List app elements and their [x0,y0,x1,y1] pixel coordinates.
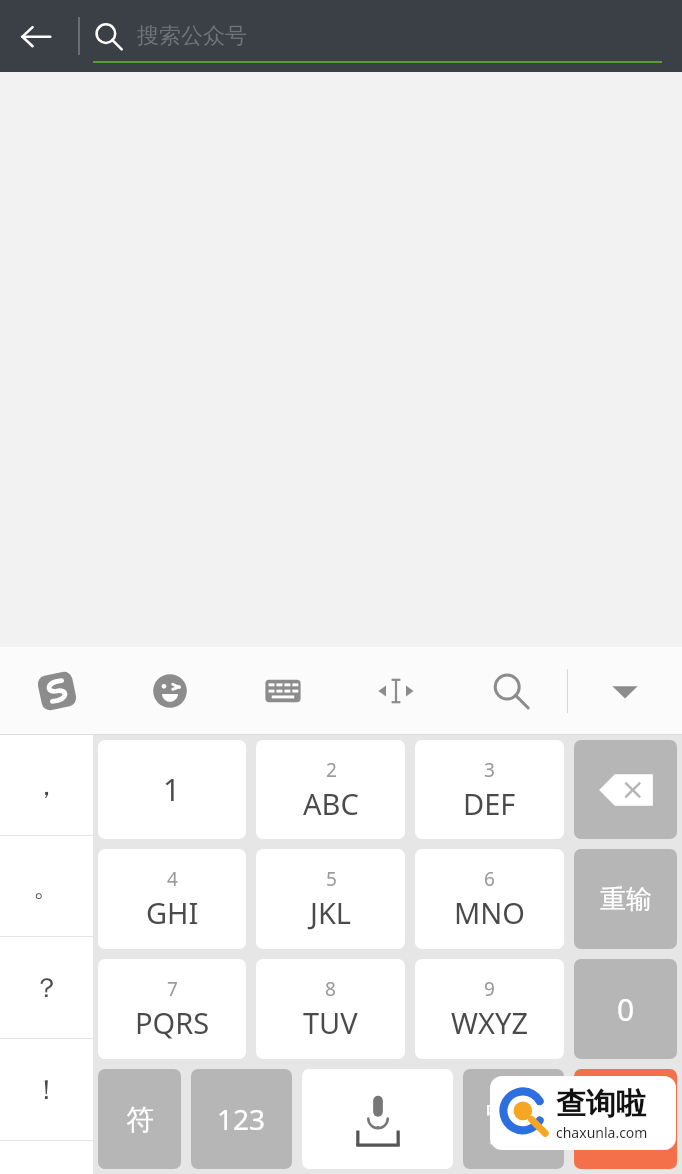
button[interactable]: Chinese English switch [463,1069,564,1169]
button[interactable]: ？ [0,937,93,1039]
staticText: 。 [33,870,60,904]
button[interactable]: 6 [415,849,564,949]
button[interactable]: Back [0,0,72,72]
staticText: 0 [617,989,635,1030]
staticText: 9 [484,976,495,1002]
button[interactable]: 重输 [574,849,677,949]
button[interactable]: Backspace [574,740,677,839]
staticText: 6 [484,866,495,892]
staticText: TUV [303,1003,358,1042]
staticText: 8 [325,976,336,1002]
staticText: DEF [463,784,516,823]
staticText: ？ [33,971,60,1005]
staticText: 2 [326,757,337,783]
staticText: 查询啦 [556,1085,646,1123]
staticText: ABC [303,784,359,823]
staticText: 1 [163,769,181,810]
staticText: ！ [33,1073,60,1107]
staticText: 符 [126,1102,154,1137]
button[interactable]: 符 [98,1069,181,1169]
button[interactable]: 8 [256,959,405,1059]
button[interactable]: 。 [0,836,93,937]
staticText: GHI [146,893,199,932]
staticText: chaxunla.com [556,1123,648,1142]
button[interactable]: Search [574,1069,677,1169]
staticText: PQRS [135,1003,210,1042]
staticText: WXYZ [451,1003,528,1042]
staticText: ， [33,769,60,803]
button[interactable]: Search [453,647,567,735]
button[interactable]: 1 [98,740,246,839]
button[interactable]: ！ [0,1039,93,1141]
button[interactable]: 5 [256,849,405,949]
staticText: 123 [217,1100,266,1138]
button[interactable]: 搜索公众号 [93,0,664,72]
button[interactable]: 7 [98,959,246,1059]
button[interactable]: 2 [256,740,405,839]
staticText: 7 [167,976,178,1002]
button[interactable]: Space and voice input [302,1069,453,1169]
staticText: 3 [484,757,495,783]
staticText: 5 [326,866,337,892]
button[interactable]: Keyboard layout [226,647,339,735]
button[interactable]: 123 [191,1069,292,1169]
button[interactable]: Emoji [113,647,226,735]
button[interactable]: Hide keyboard [568,647,682,735]
staticText: 4 [167,866,178,892]
staticText: JKL [310,893,352,932]
button[interactable]: 4 [98,849,246,949]
button[interactable]: ， [0,735,93,836]
button[interactable]: 3 [415,740,564,839]
staticText: MNO [454,893,525,932]
staticText: 搜索公众号 [137,22,247,50]
button[interactable]: Sogou input [0,647,113,735]
staticText: 重输 [600,883,652,916]
button[interactable]: 0 [574,959,677,1059]
staticText: 中 [486,1096,512,1129]
button[interactable]: 9 [415,959,564,1059]
staticText: 英 [516,1111,542,1144]
button[interactable]: Move cursor [339,647,453,735]
